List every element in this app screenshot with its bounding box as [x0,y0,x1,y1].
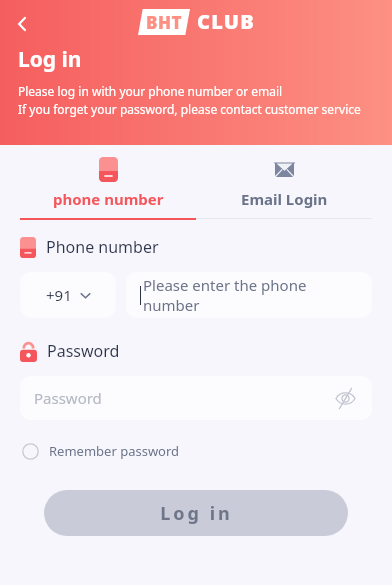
staticText: Password [47,340,120,362]
button[interactable]: Show password [332,385,358,411]
button[interactable]: +91 [20,272,116,318]
staticText: Password [34,388,102,408]
button[interactable]: Email Login [196,145,372,209]
button[interactable]: Log in [44,490,348,536]
staticText: Phone number [46,236,159,258]
staticText: If you forget your password, please cont… [18,101,361,117]
staticText: Log in [18,45,82,74]
staticText: phone number [53,189,164,209]
staticText: Please enter the phone number [143,275,358,315]
button[interactable]: Password [20,376,372,420]
staticText: Please log in with your phone number or … [18,83,283,99]
staticText: +91 [46,285,72,305]
button[interactable]: Back [4,6,40,42]
staticText: CLUB [197,8,255,35]
staticText: Remember password [49,442,180,460]
staticText: Log in [160,501,233,526]
button[interactable]: Please enter the phone number [126,272,372,318]
staticText: BHT [146,11,183,34]
button[interactable]: Remember password [20,438,182,464]
staticText: Email Login [241,189,328,209]
button[interactable]: phone number [20,145,196,209]
